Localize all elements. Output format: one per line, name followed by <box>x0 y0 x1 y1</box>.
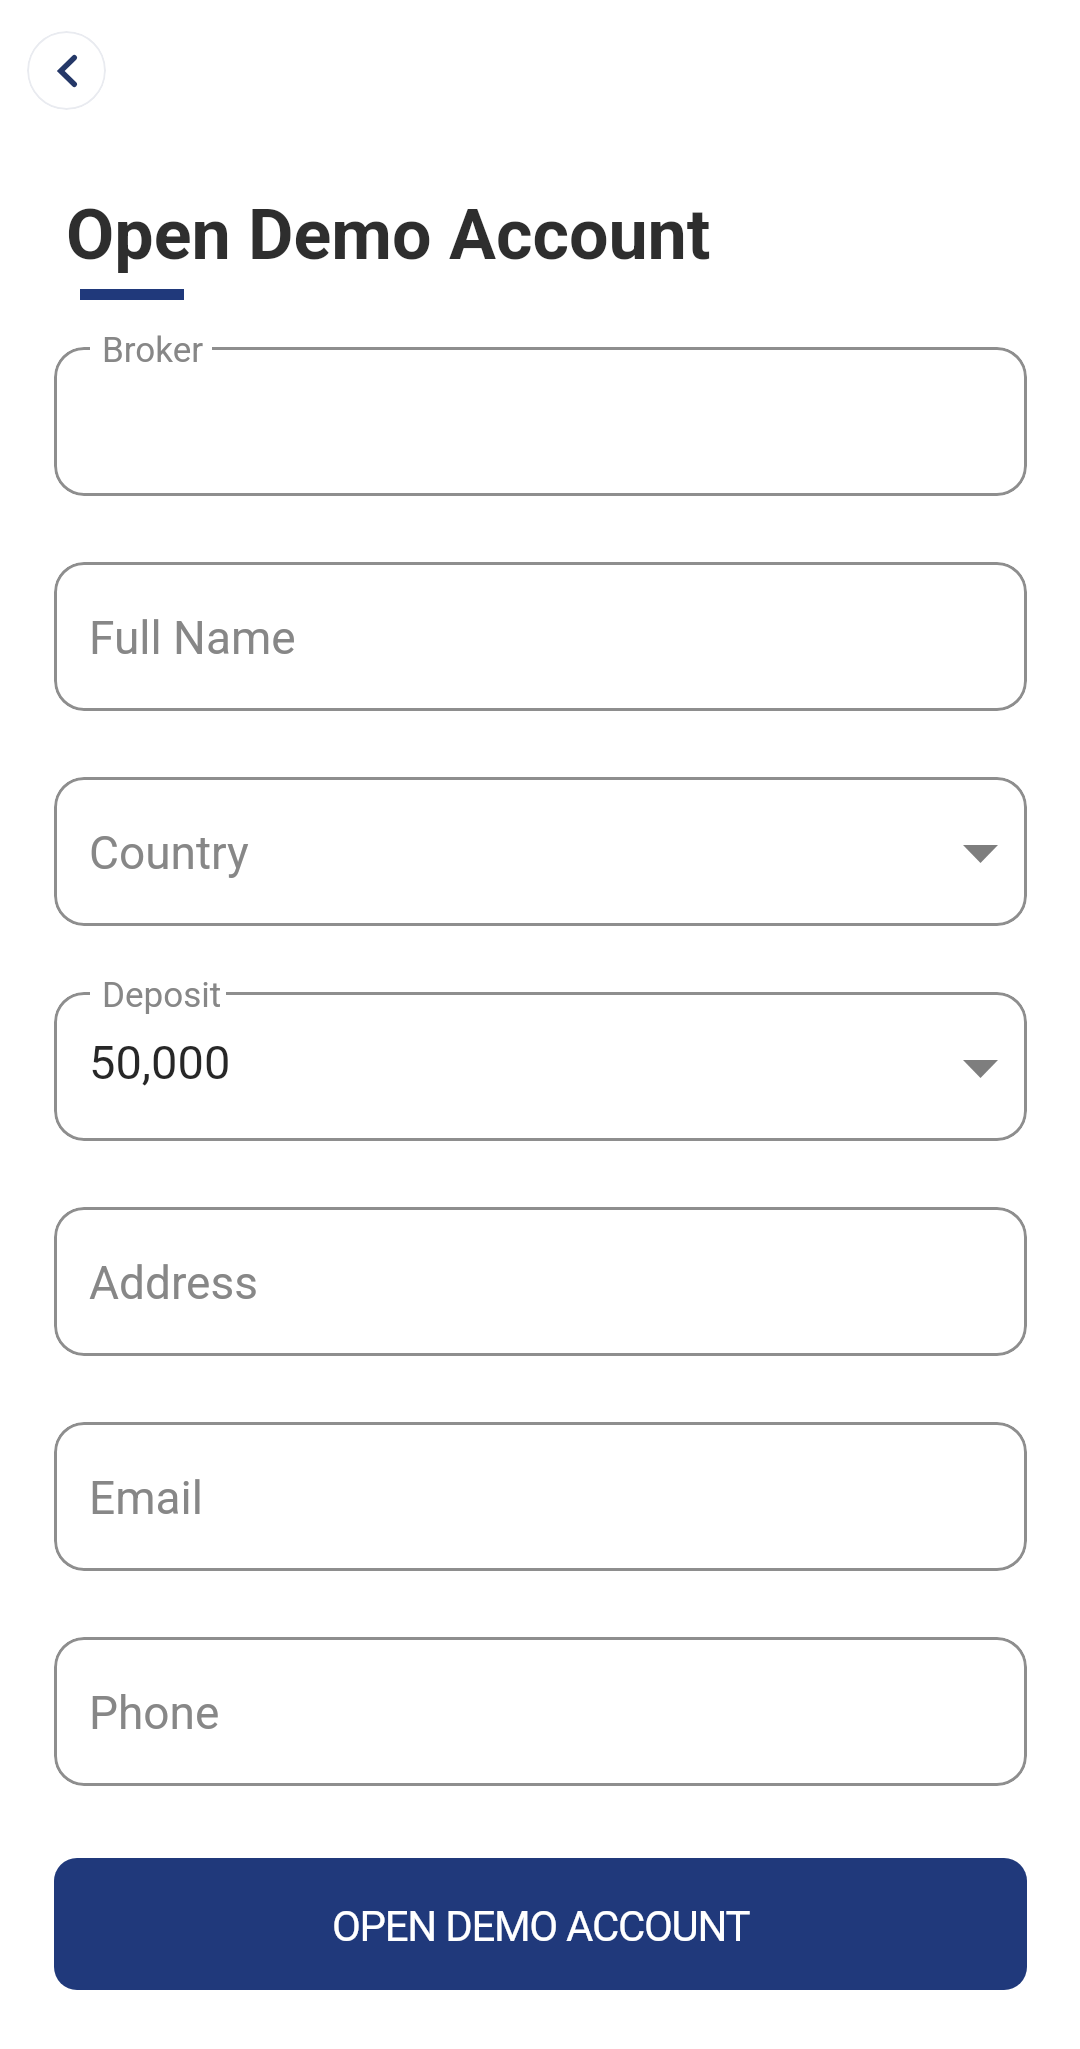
staticText: Broker <box>102 330 204 371</box>
button[interactable]: Country <box>54 777 1027 926</box>
button[interactable] <box>54 992 1027 1141</box>
button[interactable] <box>54 347 1027 496</box>
button[interactable]: Email <box>54 1422 1027 1571</box>
staticText: Deposit <box>102 975 222 1016</box>
button[interactable]: OPEN DEMO ACCOUNT <box>54 1858 1027 1990</box>
staticText: Address <box>89 1256 258 1310</box>
staticText: OPEN DEMO ACCOUNT <box>332 1902 750 1951</box>
button[interactable]: Address <box>54 1207 1027 1356</box>
staticText: 50,000 <box>89 1035 231 1090</box>
staticText: Email <box>89 1471 203 1525</box>
button[interactable]: Back <box>27 31 106 110</box>
button[interactable]: Full Name <box>54 562 1027 711</box>
staticText: Full Name <box>89 611 296 665</box>
button[interactable]: Phone <box>54 1637 1027 1786</box>
staticText: Open Demo Account <box>66 194 711 276</box>
staticText: Phone <box>89 1686 220 1740</box>
staticText: Country <box>89 826 249 880</box>
